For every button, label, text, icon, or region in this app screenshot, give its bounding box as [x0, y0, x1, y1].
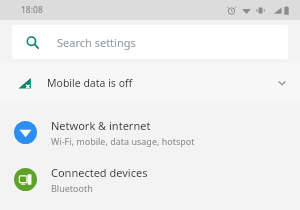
- button[interactable]: Mobile data is off: [0, 63, 300, 103]
- staticText: 18:08: [21, 4, 43, 16]
- button[interactable]: Search settings: [12, 25, 288, 59]
- button[interactable]: Network & internet: [0, 109, 300, 156]
- staticText: Connected devices: [51, 165, 148, 180]
- staticText: Bluetooth: [51, 182, 93, 194]
- staticText: Network & internet: [51, 118, 151, 133]
- staticText: Mobile data is off: [47, 76, 276, 90]
- staticText: Search settings: [57, 35, 136, 50]
- button[interactable]: Connected devices: [0, 156, 300, 203]
- staticText: Wi-Fi, mobile, data usage, hotspot: [51, 135, 195, 147]
